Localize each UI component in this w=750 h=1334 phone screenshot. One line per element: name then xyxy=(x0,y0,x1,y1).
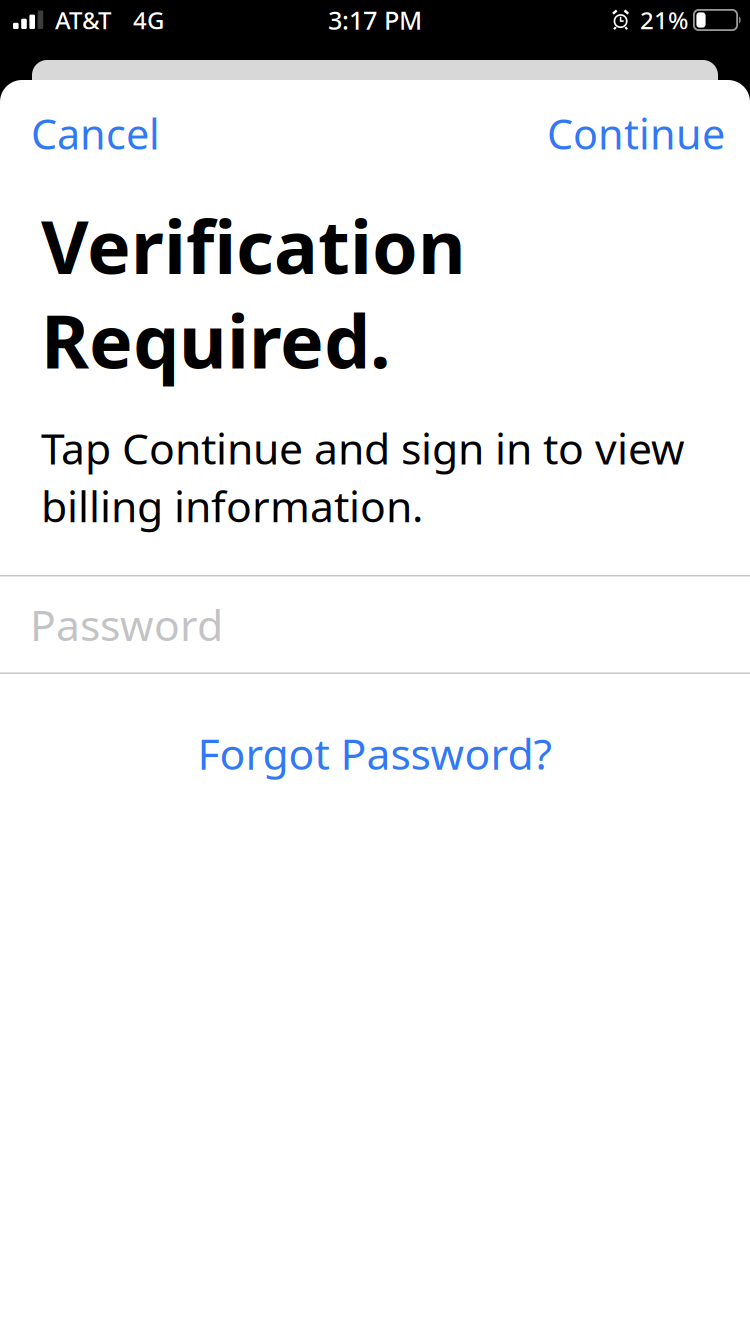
staticText: AT&T xyxy=(55,4,111,36)
button[interactable]: Password xyxy=(0,576,750,672)
staticText: Continue xyxy=(547,106,725,161)
staticText: Password xyxy=(30,596,223,653)
staticText: billing information. xyxy=(41,477,423,534)
button[interactable]: Forgot Password? xyxy=(0,703,750,804)
staticText: Verification xyxy=(41,197,466,294)
staticText: Tap Continue and sign in to view xyxy=(41,420,685,476)
button[interactable]: Continue xyxy=(530,94,736,173)
staticText: Forgot Password? xyxy=(197,725,552,782)
staticText: 21% xyxy=(640,4,688,36)
staticText: 3:17 PM xyxy=(328,3,422,37)
staticText: Required. xyxy=(41,291,391,389)
staticText: 4G xyxy=(133,4,164,36)
staticText: Cancel xyxy=(31,106,160,161)
button[interactable]: Cancel xyxy=(14,94,177,173)
